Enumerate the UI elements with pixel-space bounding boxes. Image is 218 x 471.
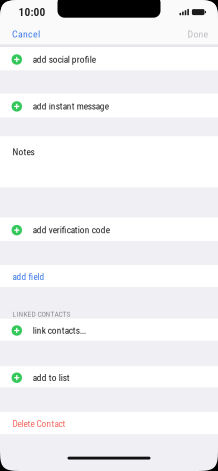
staticText: Done xyxy=(187,28,208,40)
staticText: Notes xyxy=(13,147,35,158)
button[interactable]: link contacts... xyxy=(0,319,218,341)
staticText: add field xyxy=(13,271,45,282)
staticText: 10:00 xyxy=(19,5,46,19)
staticText: add to list xyxy=(33,372,70,383)
staticText: add instant message xyxy=(33,101,109,112)
staticText: LINKED CONTACTS xyxy=(13,310,71,319)
button[interactable]: add to list xyxy=(0,366,218,388)
staticText: link contacts... xyxy=(33,325,86,336)
button[interactable]: Done xyxy=(187,21,218,45)
staticText: Delete Contact xyxy=(13,418,66,429)
button[interactable]: add instant message xyxy=(0,93,218,118)
staticText: add verification code xyxy=(33,225,110,236)
button[interactable]: add verification code xyxy=(0,217,218,241)
button[interactable]: Delete Contact xyxy=(0,412,218,434)
button[interactable]: add social profile xyxy=(0,47,218,70)
button[interactable]: add field xyxy=(0,265,218,287)
staticText: Cancel xyxy=(12,28,40,40)
button[interactable]: Notes xyxy=(0,136,218,187)
staticText: add social profile xyxy=(33,54,96,65)
button[interactable]: Cancel xyxy=(0,21,40,45)
